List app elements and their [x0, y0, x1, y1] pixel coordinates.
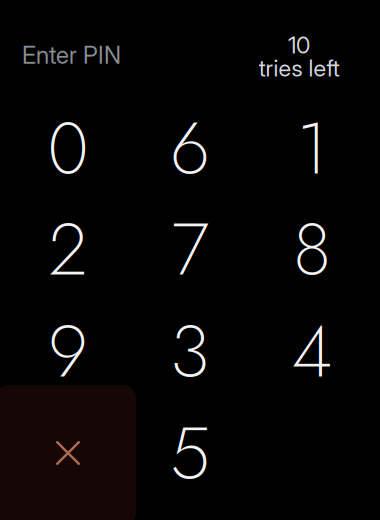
staticText: 2 — [48, 197, 87, 301]
button[interactable]: 9 — [7, 301, 129, 402]
staticText: 3 — [170, 299, 210, 403]
button[interactable]: 4 — [251, 301, 373, 402]
staticText: tries left — [258, 54, 339, 82]
staticText: 0 — [47, 96, 88, 200]
staticText: 4 — [291, 299, 332, 403]
staticText: 6 — [170, 96, 210, 200]
button[interactable]: Delete — [0, 385, 136, 520]
staticText: 10 — [288, 31, 310, 59]
button[interactable]: 5 — [129, 403, 251, 504]
staticText: 5 — [170, 401, 210, 505]
button[interactable]: 1 — [251, 98, 373, 199]
staticText: Enter PIN — [22, 40, 121, 69]
button[interactable]: 6 — [129, 98, 251, 199]
button[interactable]: 7 — [129, 199, 251, 300]
staticText: 8 — [293, 197, 331, 301]
staticText: 7 — [171, 197, 208, 301]
staticText: 1 — [296, 96, 327, 200]
button[interactable]: 8 — [251, 199, 373, 300]
button[interactable]: 2 — [7, 199, 129, 300]
button[interactable]: 0 — [7, 98, 129, 199]
button[interactable]: 3 — [129, 301, 251, 402]
staticText: 9 — [48, 299, 88, 403]
